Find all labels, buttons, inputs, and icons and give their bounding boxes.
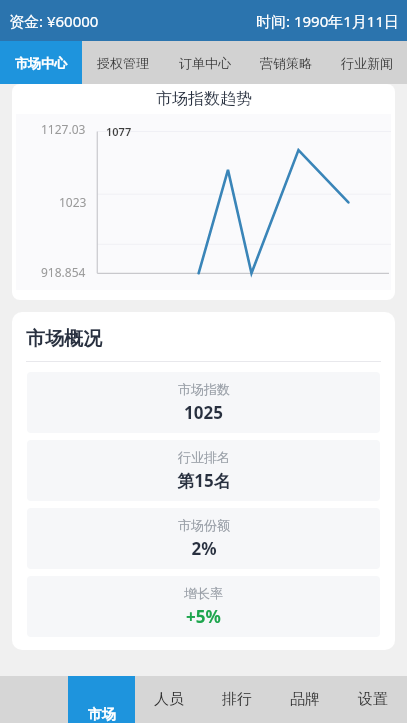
staticText: 时间: 1990年1月11日	[256, 11, 399, 31]
staticText: 授权管理	[97, 55, 149, 71]
staticText: 2%	[191, 537, 217, 560]
staticText: 第15名	[177, 469, 231, 492]
staticText: +5%	[186, 605, 221, 628]
staticText: 市场份额	[178, 517, 230, 533]
staticText: 市场	[88, 706, 116, 723]
button[interactable]: 当前页	[68, 676, 135, 723]
staticText: 品牌	[290, 690, 320, 709]
staticText: 设置	[358, 690, 388, 709]
staticText: 1127.03	[41, 121, 86, 137]
staticText: 增长率	[184, 585, 223, 601]
button[interactable]: 排行	[203, 676, 271, 723]
staticText: 排行	[222, 690, 252, 709]
staticText: 市场指数	[178, 381, 230, 397]
button[interactable]: 市场指数	[27, 372, 380, 433]
button[interactable]: 品牌	[271, 676, 339, 723]
button[interactable]: 行业排名	[27, 440, 380, 501]
staticText: 918.854	[41, 264, 86, 280]
staticText: 行业排名	[178, 449, 230, 465]
button[interactable]: 市场中心	[0, 41, 82, 84]
button[interactable]: 授权管理	[82, 41, 164, 84]
staticText: 市场中心	[15, 55, 67, 71]
staticText: 市场指数趋势	[156, 89, 252, 109]
staticText: 营销策略	[260, 55, 312, 71]
staticText: 1077	[106, 124, 132, 139]
staticText: 行业新闻	[341, 55, 393, 71]
staticText: 资金: ¥60000	[9, 11, 99, 31]
staticText: 订单中心	[179, 55, 231, 71]
staticText: 1025	[184, 401, 223, 424]
button[interactable]: 设置	[339, 676, 407, 723]
button[interactable]: 增长率	[27, 576, 380, 637]
button[interactable]: 人员	[135, 676, 203, 723]
button[interactable]: 市场份额	[27, 508, 380, 569]
button[interactable]: 行业新闻	[326, 41, 407, 84]
button[interactable]: 营销策略	[245, 41, 326, 84]
staticText: 人员	[154, 690, 184, 709]
button[interactable]: 订单中心	[164, 41, 245, 84]
staticText: 1023	[59, 194, 87, 210]
staticText: 市场概况	[26, 327, 102, 351]
